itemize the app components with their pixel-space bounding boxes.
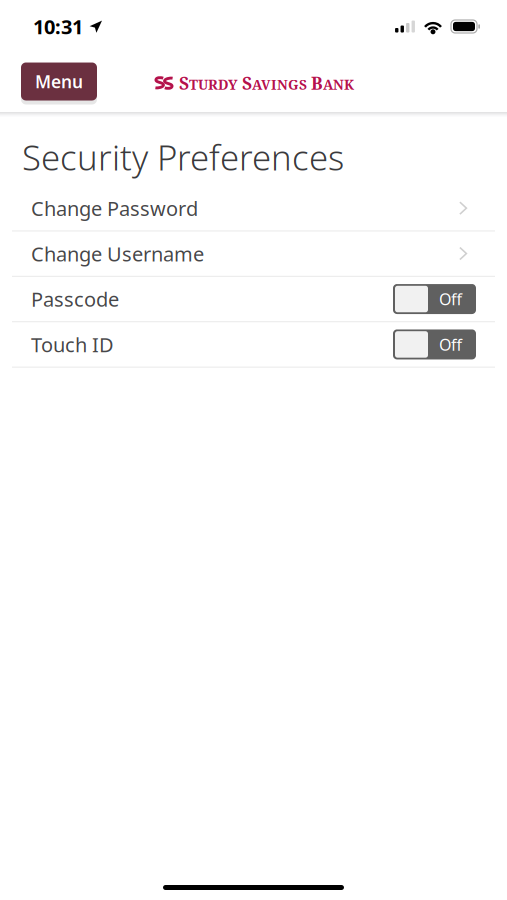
staticText: AVINGS [252,75,311,94]
button[interactable]: Menu [21,62,97,100]
staticText: ANK [323,75,354,94]
button[interactable]: Touch ID, off [393,329,476,359]
staticText: Passcode [31,286,119,312]
staticText: Change Password [31,195,198,222]
staticText: 10:31 [33,13,83,40]
staticText: TURDY [189,75,242,94]
button[interactable]: Passcode, off [393,284,476,314]
staticText: B [311,71,323,95]
button[interactable]: Sturdy Savings Bank home [153,71,354,95]
button[interactable]: Touch ID [0,322,507,367]
staticText: Touch ID [31,331,114,358]
button[interactable]: Change Username [0,231,507,276]
staticText: Off [439,334,462,355]
button[interactable]: Passcode [0,277,507,321]
staticText: Security Preferences [22,134,344,180]
staticText: S [242,71,252,95]
staticText: Menu [35,70,83,93]
staticText: Off [439,288,462,310]
staticText: Change Username [31,240,204,267]
button[interactable]: Change Password [0,186,507,230]
staticText: S [179,71,189,95]
